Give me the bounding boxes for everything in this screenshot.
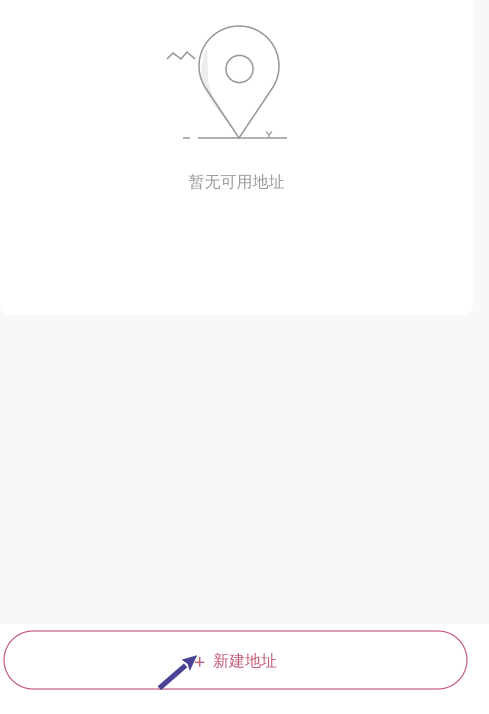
staticText: 暂无可用地址 [188,172,284,192]
button[interactable]: + [4,631,467,689]
staticText: 新建地址 [213,651,277,671]
staticText: + [194,648,205,674]
